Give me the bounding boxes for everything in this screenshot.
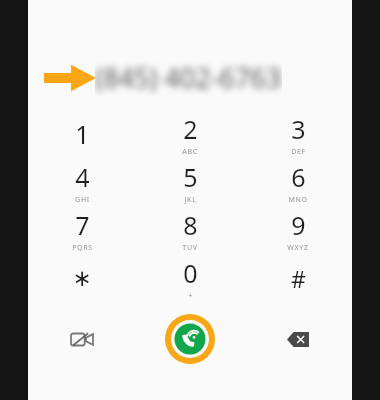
staticText: TUV	[182, 243, 198, 253]
staticText: JKL	[184, 195, 197, 205]
staticText: MNO	[288, 195, 308, 205]
button[interactable]: Backspace	[244, 310, 352, 368]
button[interactable]: 2	[136, 110, 244, 158]
button[interactable]: 6	[244, 158, 352, 206]
staticText: #	[291, 263, 306, 294]
staticText: 9	[291, 208, 306, 242]
staticText: PQRS	[72, 243, 93, 253]
staticText: 6	[291, 160, 306, 194]
button[interactable]: 9	[244, 206, 352, 254]
button[interactable]: 8	[136, 206, 244, 254]
staticText: 1	[75, 117, 90, 151]
button[interactable]: Call	[165, 314, 215, 364]
staticText: +	[188, 291, 193, 301]
staticText: 0	[183, 256, 198, 290]
button[interactable]: #	[244, 254, 352, 302]
button[interactable]: 0	[136, 254, 244, 302]
staticText: GHI	[75, 195, 90, 205]
button[interactable]: ∗	[28, 254, 136, 302]
staticText: ∗	[72, 265, 92, 292]
staticText: 4	[75, 160, 90, 194]
button[interactable]: Video call	[28, 310, 136, 368]
staticText: 3	[291, 112, 306, 146]
staticText: WXYZ	[287, 243, 309, 253]
staticText: (845) 402-6763	[95, 59, 282, 96]
staticText: 2	[183, 112, 198, 146]
button[interactable]: 1	[28, 110, 136, 158]
staticText: DEF	[291, 147, 306, 157]
button[interactable]: 4	[28, 158, 136, 206]
button[interactable]: 7	[28, 206, 136, 254]
staticText: 8	[183, 208, 198, 242]
staticText: 7	[75, 208, 90, 242]
button[interactable]: 3	[244, 110, 352, 158]
staticText: ABC	[182, 147, 198, 157]
staticText: 5	[183, 160, 198, 194]
button[interactable]: 5	[136, 158, 244, 206]
